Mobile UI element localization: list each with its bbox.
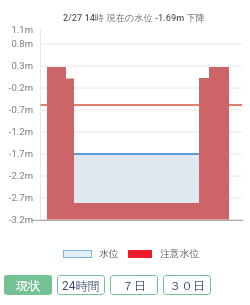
staticText: 1.1m <box>0 24 33 35</box>
button[interactable]: ７日 <box>110 275 158 295</box>
staticText: ７日 <box>122 278 146 293</box>
staticText: -0.7m <box>0 104 33 115</box>
staticText: -2.2m <box>0 170 33 181</box>
staticText: -1.7m <box>0 148 33 159</box>
staticText: 2/27 14時 現在の水位 -1.69m 下降 <box>63 12 205 24</box>
staticText: -2.7m <box>0 192 33 203</box>
staticText: -0.2m <box>0 82 33 93</box>
staticText: -1.2m <box>0 126 33 137</box>
button[interactable]: 24時間 <box>57 275 105 295</box>
button[interactable]: 現状 <box>4 275 52 295</box>
button[interactable]: ３０日 <box>163 275 211 295</box>
staticText: -3.2m <box>0 214 33 225</box>
staticText: 現状 <box>16 278 40 293</box>
staticText: 24時間 <box>62 278 100 293</box>
staticText: 0.3m <box>0 60 33 71</box>
staticText: 水位 <box>99 248 119 260</box>
staticText: ３０日 <box>169 278 205 293</box>
staticText: 0.8m <box>0 38 33 49</box>
staticText: 注意水位 <box>160 248 200 260</box>
